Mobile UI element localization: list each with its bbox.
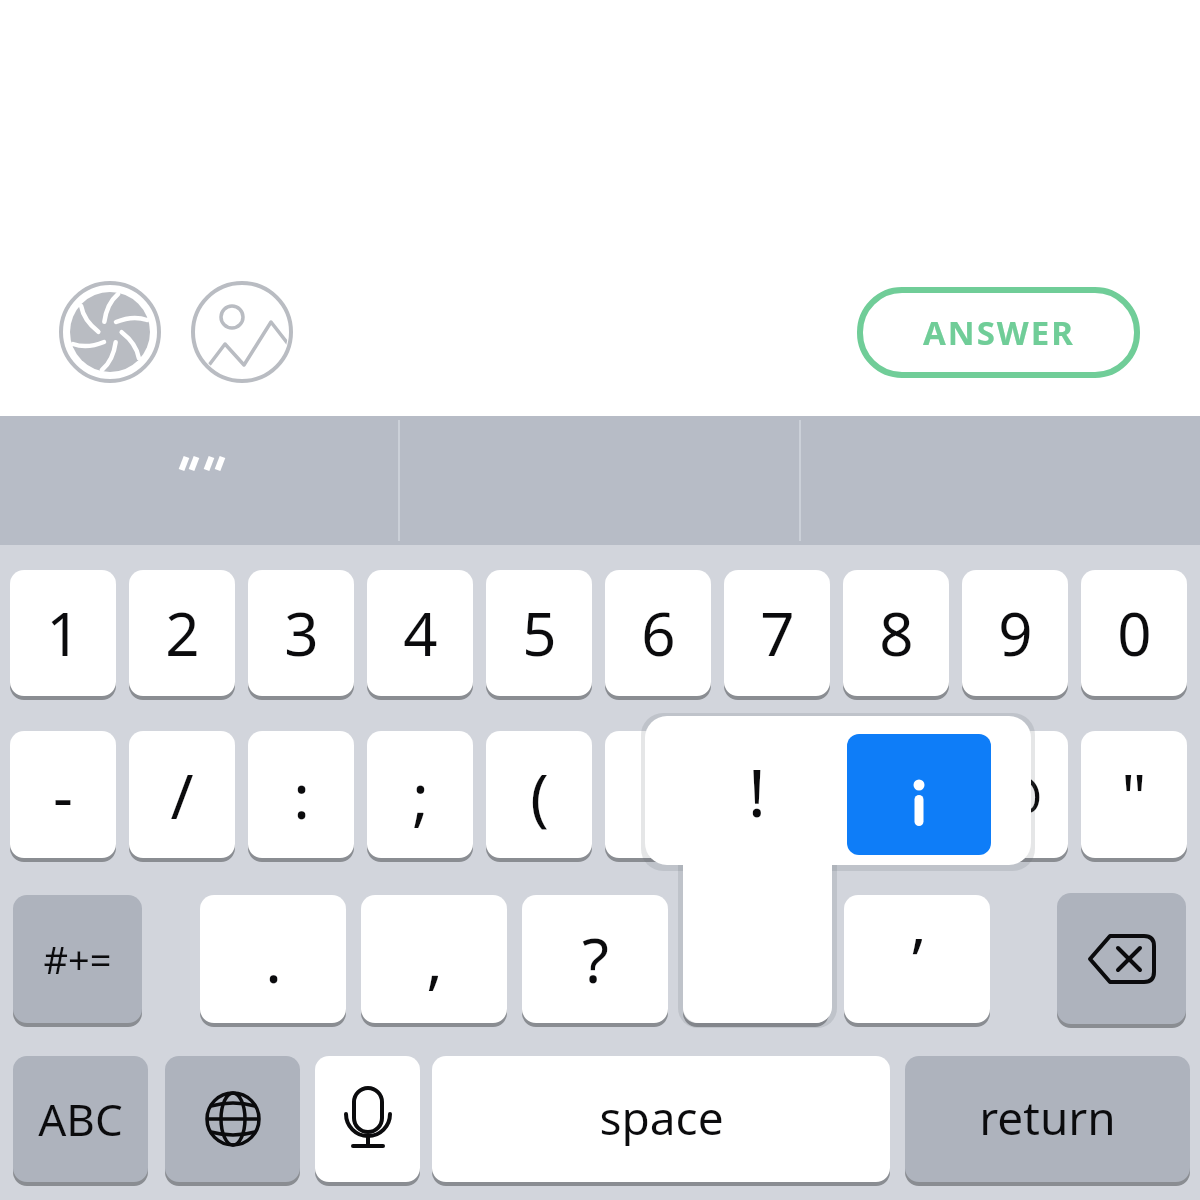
staticText: ANSWER: [923, 310, 1075, 355]
staticText: #+=: [43, 933, 112, 985]
button[interactable]: ANSWER: [857, 287, 1140, 378]
staticText: 3: [284, 592, 319, 674]
staticText: ,: [426, 917, 443, 1001]
staticText: space: [599, 1086, 724, 1149]
button[interactable]: .: [200, 895, 346, 1023]
staticText: $: [759, 753, 795, 837]
staticText: ABC: [38, 1089, 123, 1149]
staticText: 8: [879, 592, 914, 674]
button[interactable]: [165, 1056, 300, 1182]
button[interactable]: #+=: [13, 895, 142, 1023]
staticText: /: [170, 753, 194, 837]
button[interactable]: 7: [724, 570, 830, 696]
button[interactable]: ,: [361, 895, 507, 1023]
button[interactable]: [0, 416, 1200, 545]
button[interactable]: -: [10, 731, 116, 858]
staticText: .: [265, 917, 282, 1001]
button[interactable]: @: [962, 731, 1068, 858]
button[interactable]: :: [248, 731, 354, 858]
button[interactable]: $: [724, 731, 830, 858]
staticText: ;: [412, 753, 429, 837]
button[interactable]: 3: [248, 570, 354, 696]
button[interactable]: 5: [486, 570, 592, 696]
staticText: -: [53, 753, 73, 837]
button[interactable]: ABC: [13, 1056, 148, 1182]
button[interactable]: [192, 282, 292, 382]
button[interactable]: /: [129, 731, 235, 858]
button[interactable]: [645, 716, 1031, 865]
button[interactable]: ?: [522, 895, 668, 1023]
staticText: @: [987, 753, 1043, 837]
staticText: 6: [641, 592, 676, 674]
staticText: 1: [46, 592, 81, 674]
staticText: 7: [760, 592, 795, 674]
button[interactable]: 1: [10, 570, 116, 696]
button[interactable]: !: [683, 895, 829, 1023]
staticText: !: [748, 746, 766, 836]
staticText: :: [293, 753, 310, 837]
staticText: ’: [912, 917, 923, 1001]
button[interactable]: 8: [843, 570, 949, 696]
button[interactable]: return: [905, 1056, 1190, 1182]
button[interactable]: 0: [1081, 570, 1187, 696]
button[interactable]: 6: [605, 570, 711, 696]
button[interactable]: &: [843, 731, 949, 858]
staticText: return: [979, 1086, 1116, 1149]
staticText: ?: [582, 917, 609, 1001]
staticText: 5: [522, 592, 557, 674]
button[interactable]: 4: [367, 570, 473, 696]
button[interactable]: ’: [844, 895, 990, 1023]
button[interactable]: ;: [367, 731, 473, 858]
button[interactable]: [60, 282, 160, 382]
button[interactable]: [1057, 893, 1186, 1024]
button[interactable]: ": [1081, 731, 1187, 858]
button[interactable]: (: [486, 731, 592, 858]
button[interactable]: 9: [962, 570, 1068, 696]
staticText: 2: [165, 592, 200, 674]
button[interactable]: ): [605, 731, 711, 858]
staticText: (: [530, 753, 549, 837]
staticText: ": [1121, 753, 1147, 837]
button[interactable]: space: [432, 1056, 890, 1182]
staticText: 0: [1117, 592, 1152, 674]
staticText: 4: [403, 592, 438, 674]
staticText: 9: [998, 592, 1033, 674]
button[interactable]: 2: [129, 570, 235, 696]
button[interactable]: [315, 1056, 420, 1182]
staticText: &: [873, 753, 919, 837]
button[interactable]: [847, 734, 991, 855]
